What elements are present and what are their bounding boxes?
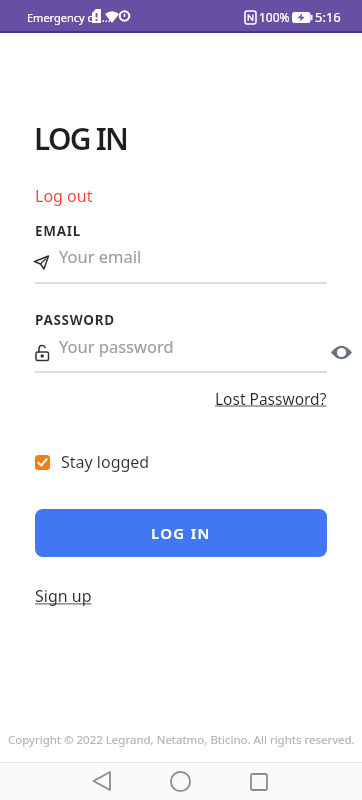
staticText: Lost Password?: [215, 388, 327, 409]
staticText: 5:16: [315, 8, 341, 26]
staticText: Log out: [35, 185, 93, 207]
button[interactable]: [160, 762, 201, 800]
button[interactable]: Sign up: [31, 581, 96, 611]
button[interactable]: [239, 763, 279, 800]
staticText: Sign up: [35, 585, 92, 607]
button[interactable]: Your password: [59, 335, 174, 357]
button[interactable]: Lost Password?: [210, 383, 332, 414]
staticText: 100%: [259, 9, 290, 25]
button[interactable]: Stay logged: [35, 451, 150, 473]
staticText: Emergency cal...: [27, 10, 111, 25]
staticText: Your email: [59, 245, 142, 267]
staticText: Your password: [59, 335, 174, 357]
staticText: Stay logged: [61, 451, 150, 473]
button[interactable]: Your email: [59, 245, 142, 267]
button[interactable]: [82, 762, 122, 800]
staticText: Copyright © 2022 Legrand, Netatmo, Btici…: [8, 732, 355, 748]
button[interactable]: LOG IN: [35, 509, 327, 557]
staticText: LOG IN: [151, 523, 211, 543]
staticText: LOG IN: [34, 118, 128, 159]
button[interactable]: [326, 339, 356, 366]
staticText: PASSWORD: [35, 311, 115, 329]
staticText: EMAIL: [35, 222, 81, 240]
button[interactable]: Log out: [30, 180, 98, 212]
